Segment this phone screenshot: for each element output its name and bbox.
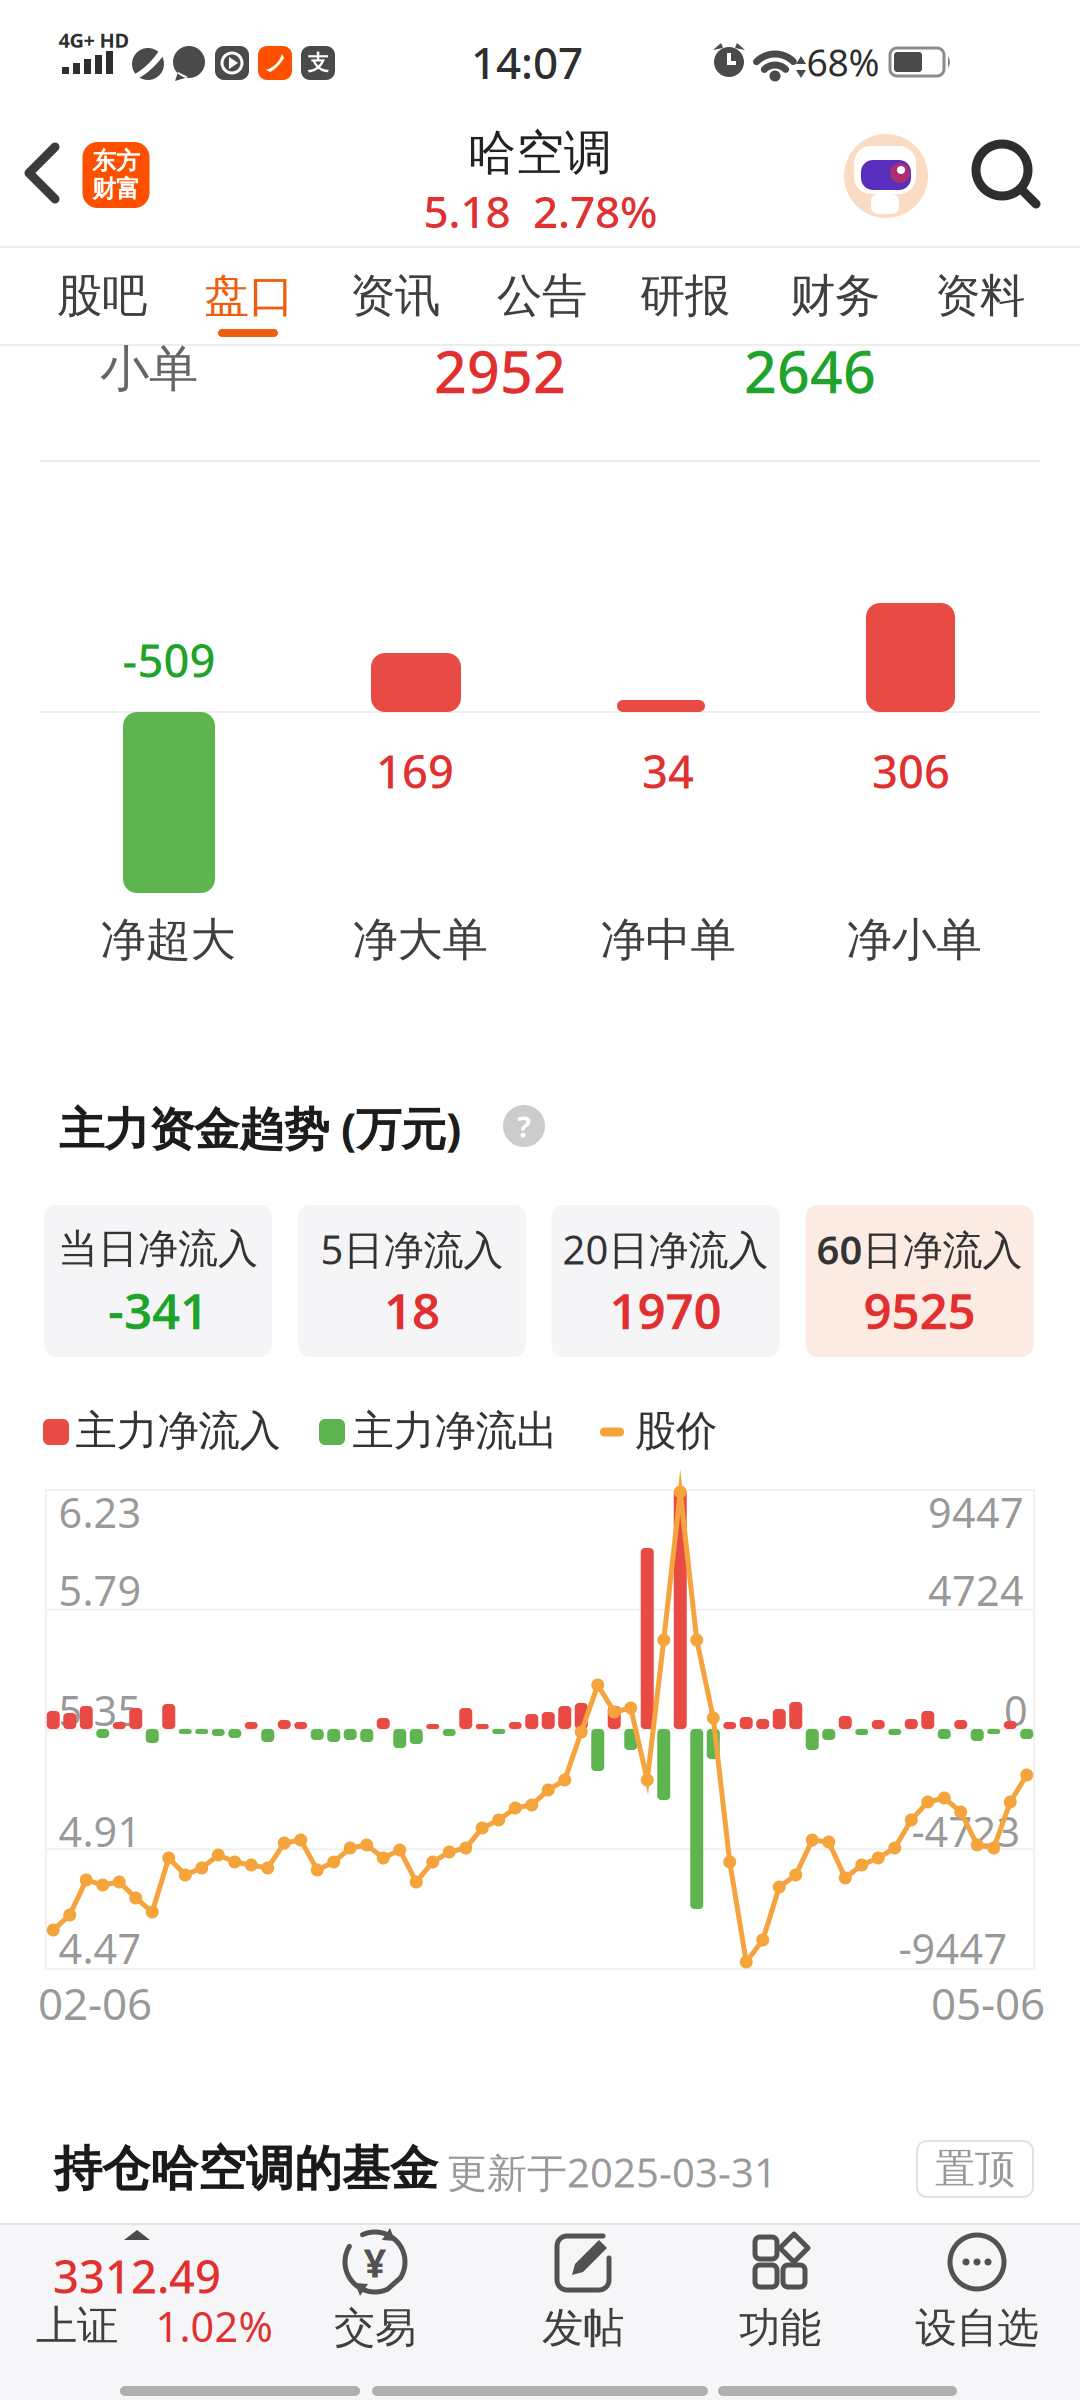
staticText: 169 (376, 741, 454, 801)
staticText: 设自选 (915, 2303, 1038, 2353)
staticText: 4724 (928, 1563, 1024, 1617)
staticText: 5.35 (58, 1683, 141, 1737)
staticText: 研报 (640, 268, 730, 324)
button[interactable]: 60日净流入 (805, 1205, 1033, 1357)
staticText: 6.23 (58, 1485, 141, 1539)
staticText: 主力资金趋势 (万元) (59, 1098, 461, 1158)
staticText: 1.02% (155, 2299, 272, 2353)
staticText: 当日净流入 (58, 1224, 258, 1273)
staticText: 净大单 (352, 912, 487, 968)
button[interactable]: 20日净流入 (551, 1205, 779, 1357)
button[interactable]: 当日净流入 (44, 1205, 272, 1357)
staticText: 置顶 (935, 2144, 1015, 2193)
staticText: 小单 (100, 339, 198, 399)
staticText: 1970 (609, 1277, 721, 1343)
staticText: 2646 (744, 333, 876, 409)
staticText: 5.79 (58, 1563, 141, 1617)
button[interactable]: 置顶 (916, 2140, 1034, 2198)
staticText: 4.47 (58, 1921, 141, 1975)
staticText: 34 (642, 741, 694, 801)
staticText: -9447 (898, 1921, 1007, 1975)
staticText: 68% (806, 37, 879, 87)
staticText: 资讯 (350, 268, 440, 324)
staticText: 盘口 (204, 268, 294, 324)
button[interactable]: ? (503, 1105, 545, 1147)
button[interactable]: 资讯 (330, 251, 460, 341)
staticText: 9447 (928, 1485, 1024, 1539)
button[interactable]: 股吧 (37, 251, 167, 341)
button[interactable]: 发帖 (503, 2210, 663, 2360)
staticText: 14:07 (471, 33, 583, 91)
staticText: 财务 (790, 268, 880, 324)
button[interactable] (25, 143, 61, 203)
button[interactable]: ¥ (295, 2210, 455, 2360)
button[interactable]: 资料 (915, 251, 1045, 341)
staticText: 交易 (334, 2303, 416, 2353)
button[interactable]: 5日净流入 (298, 1205, 526, 1357)
staticText: 哈空调 (468, 123, 612, 182)
staticText: -341 (108, 1277, 208, 1343)
staticText: 资料 (935, 268, 1025, 324)
staticText: 60日净流入 (816, 1222, 1022, 1275)
staticText: 3312.49 (53, 2246, 221, 2306)
staticText: 4G+ HD (58, 27, 129, 53)
staticText: 9525 (863, 1277, 975, 1343)
staticText: 主力净流入 (75, 1406, 280, 1456)
button[interactable]: 东方 (82, 142, 149, 208)
staticText: 净小单 (846, 912, 981, 968)
staticText: 02-06 (38, 1974, 152, 2032)
button[interactable]: 设自选 (897, 2210, 1057, 2360)
staticText: ? (517, 1106, 531, 1145)
staticText: 4.91 (58, 1804, 141, 1858)
staticText: 支 (307, 50, 328, 76)
staticText: 股价 (635, 1406, 717, 1456)
staticText: 公告 (497, 268, 587, 324)
staticText: 2.78% (533, 182, 657, 240)
staticText: 股吧 (57, 268, 147, 324)
staticText: 2952 (434, 333, 566, 409)
button[interactable] (972, 140, 1042, 210)
staticText: 功能 (739, 2303, 821, 2353)
staticText: 财富 (92, 174, 140, 204)
staticText: -4723 (911, 1804, 1020, 1858)
staticText: 主力净流出 (352, 1406, 557, 1456)
staticText: 净中单 (600, 912, 735, 968)
button[interactable]: 功能 (700, 2210, 860, 2360)
button[interactable]: 公告 (477, 251, 607, 341)
staticText: 更新于2025-03-31 (447, 2145, 777, 2198)
staticText: 5.18 (423, 182, 510, 240)
staticText: 持仓哈空调的基金 (54, 2139, 438, 2198)
staticText: 5日净流入 (320, 1222, 503, 1275)
staticText: 发帖 (542, 2303, 624, 2353)
staticText: -509 (122, 630, 215, 690)
button[interactable]: 3312.49 (0, 2228, 280, 2358)
button[interactable]: 研报 (620, 251, 750, 341)
staticText: 东方 (92, 146, 140, 176)
staticText: ¥ (363, 2235, 386, 2288)
button[interactable]: 盘口 (184, 251, 314, 341)
staticText: 0 (1004, 1683, 1028, 1737)
staticText: 05-06 (931, 1974, 1045, 2032)
staticText: 20日净流入 (562, 1222, 768, 1275)
staticText: 上证 (36, 2301, 118, 2351)
button[interactable] (844, 134, 928, 218)
staticText: 净超大 (100, 912, 235, 968)
staticText: 18 (384, 1277, 440, 1343)
button[interactable]: 财务 (770, 251, 900, 341)
staticText: 306 (872, 741, 950, 801)
